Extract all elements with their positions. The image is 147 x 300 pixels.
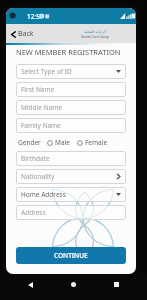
staticText: First Name: [21, 85, 55, 94]
button[interactable]: Back: [24, 278, 37, 291]
staticText: Middle Name: [21, 103, 62, 112]
staticText: Health Care Group: [81, 35, 109, 39]
button[interactable]: Family Name: [16, 118, 126, 133]
staticText: Nationality: [21, 172, 55, 181]
button[interactable]: Nationality: [16, 169, 126, 184]
button[interactable]: Birthdate: [16, 151, 126, 166]
staticText: Birthdate: [21, 154, 50, 163]
staticText: Back: [18, 29, 34, 39]
staticText: Family Name: [21, 121, 61, 130]
button[interactable]: CONTINUE: [16, 247, 126, 264]
staticText: الرعاية الصحية: [84, 29, 106, 34]
staticText: 12:57: [27, 12, 44, 21]
button[interactable]: Home Address: [16, 187, 126, 202]
staticText: Female: [85, 138, 108, 147]
button[interactable]: Home: [67, 278, 80, 291]
button[interactable]: Address: [16, 205, 126, 220]
staticText: Gender: [18, 138, 41, 147]
button[interactable]: Female: [76, 136, 109, 149]
button[interactable]: Male: [46, 136, 71, 149]
button[interactable]: Middle Name: [16, 100, 126, 115]
staticText: CONTINUE: [54, 251, 88, 260]
button[interactable]: Select Type of ID: [16, 64, 126, 79]
staticText: Home Address: [21, 190, 66, 199]
staticText: NEW MEMBER REGISTRATION: [16, 47, 121, 57]
staticText: Select Type of ID: [21, 67, 72, 76]
button[interactable]: First Name: [16, 82, 126, 97]
button[interactable]: Recent apps: [110, 278, 123, 291]
button[interactable]: Back: [6, 25, 40, 43]
staticText: Male: [55, 138, 70, 147]
staticText: Address: [21, 208, 46, 217]
